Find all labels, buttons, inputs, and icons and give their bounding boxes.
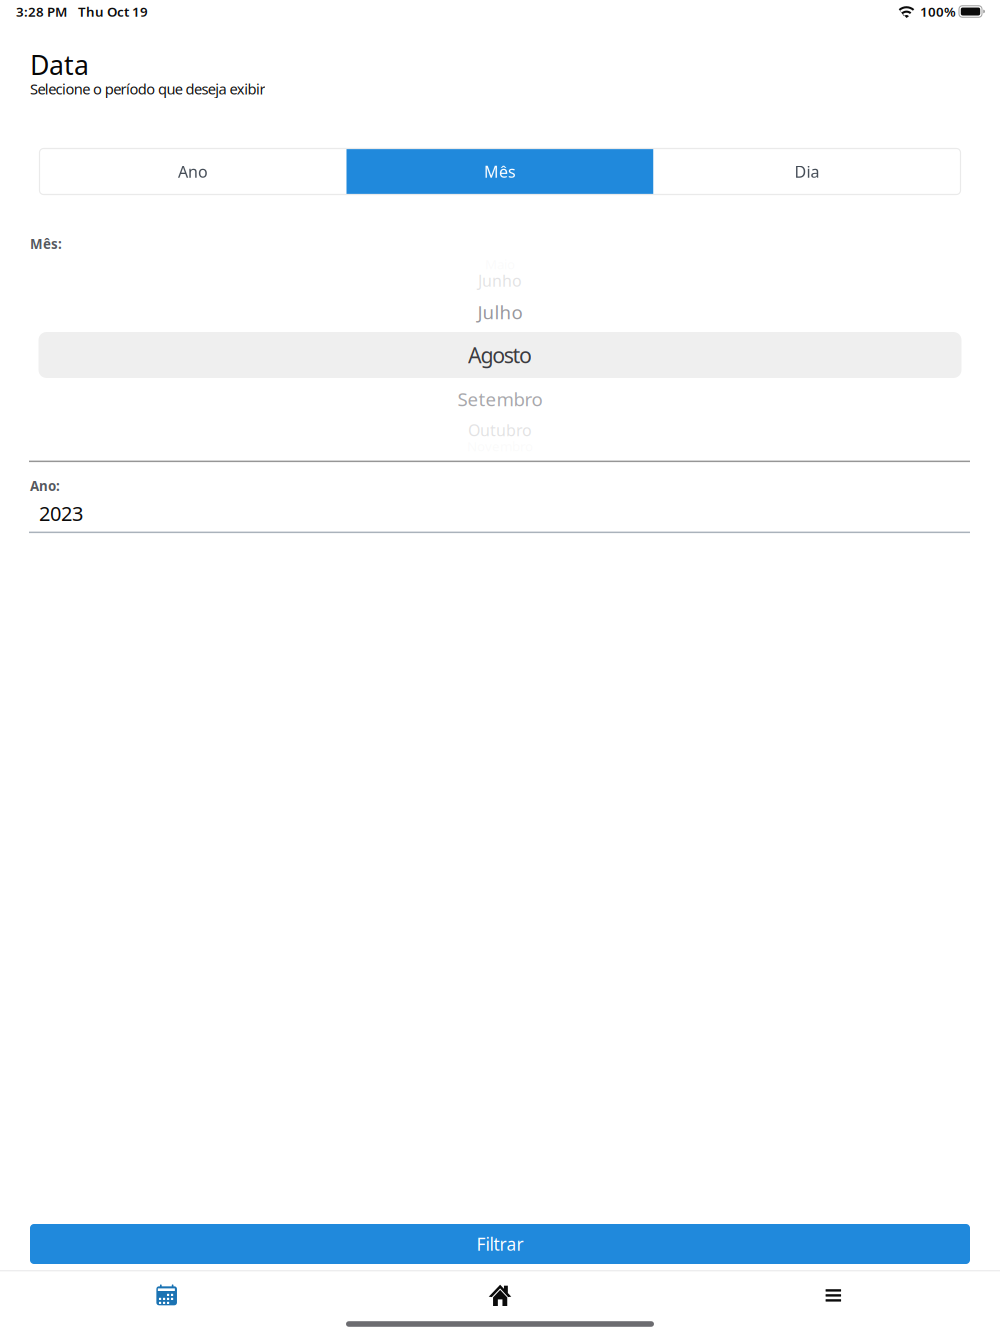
staticText: Mês	[484, 161, 516, 182]
staticText: Outubro	[468, 419, 532, 441]
button[interactable]: Calendário	[0, 1273, 333, 1317]
button[interactable]: Agosto	[38, 333, 961, 376]
button[interactable]: Início	[333, 1273, 667, 1317]
staticText: Ano	[178, 161, 208, 182]
staticText: Filtrar	[476, 1232, 523, 1255]
staticText: Thu Oct 19	[78, 3, 148, 20]
button[interactable]: Julho	[38, 290, 961, 333]
button[interactable]: Novembro	[38, 424, 961, 467]
staticText: Junho	[478, 270, 522, 291]
button[interactable]: Menu	[667, 1273, 1000, 1317]
button[interactable]: 2023	[29, 495, 970, 533]
staticText: Setembro	[457, 387, 542, 411]
button[interactable]: Maio	[38, 242, 961, 285]
staticText: Ano:	[30, 477, 60, 495]
staticText: Mês:	[30, 235, 62, 253]
staticText: 3:28 PM	[16, 3, 67, 20]
staticText: Selecione o período que deseja exibir	[30, 79, 265, 98]
staticText: Dia	[794, 161, 819, 182]
button[interactable]: Dia	[653, 148, 960, 194]
button[interactable]: Filtrar	[30, 1224, 970, 1264]
button[interactable]: Ano	[39, 148, 346, 194]
staticText: Julho	[477, 300, 522, 324]
button[interactable]: Mês	[346, 148, 653, 194]
staticText: Agosto	[468, 341, 532, 369]
staticText: 2023	[39, 500, 83, 527]
button[interactable]: Setembro	[38, 377, 961, 420]
staticText: Data	[30, 47, 89, 82]
staticText: 100%	[920, 3, 956, 20]
